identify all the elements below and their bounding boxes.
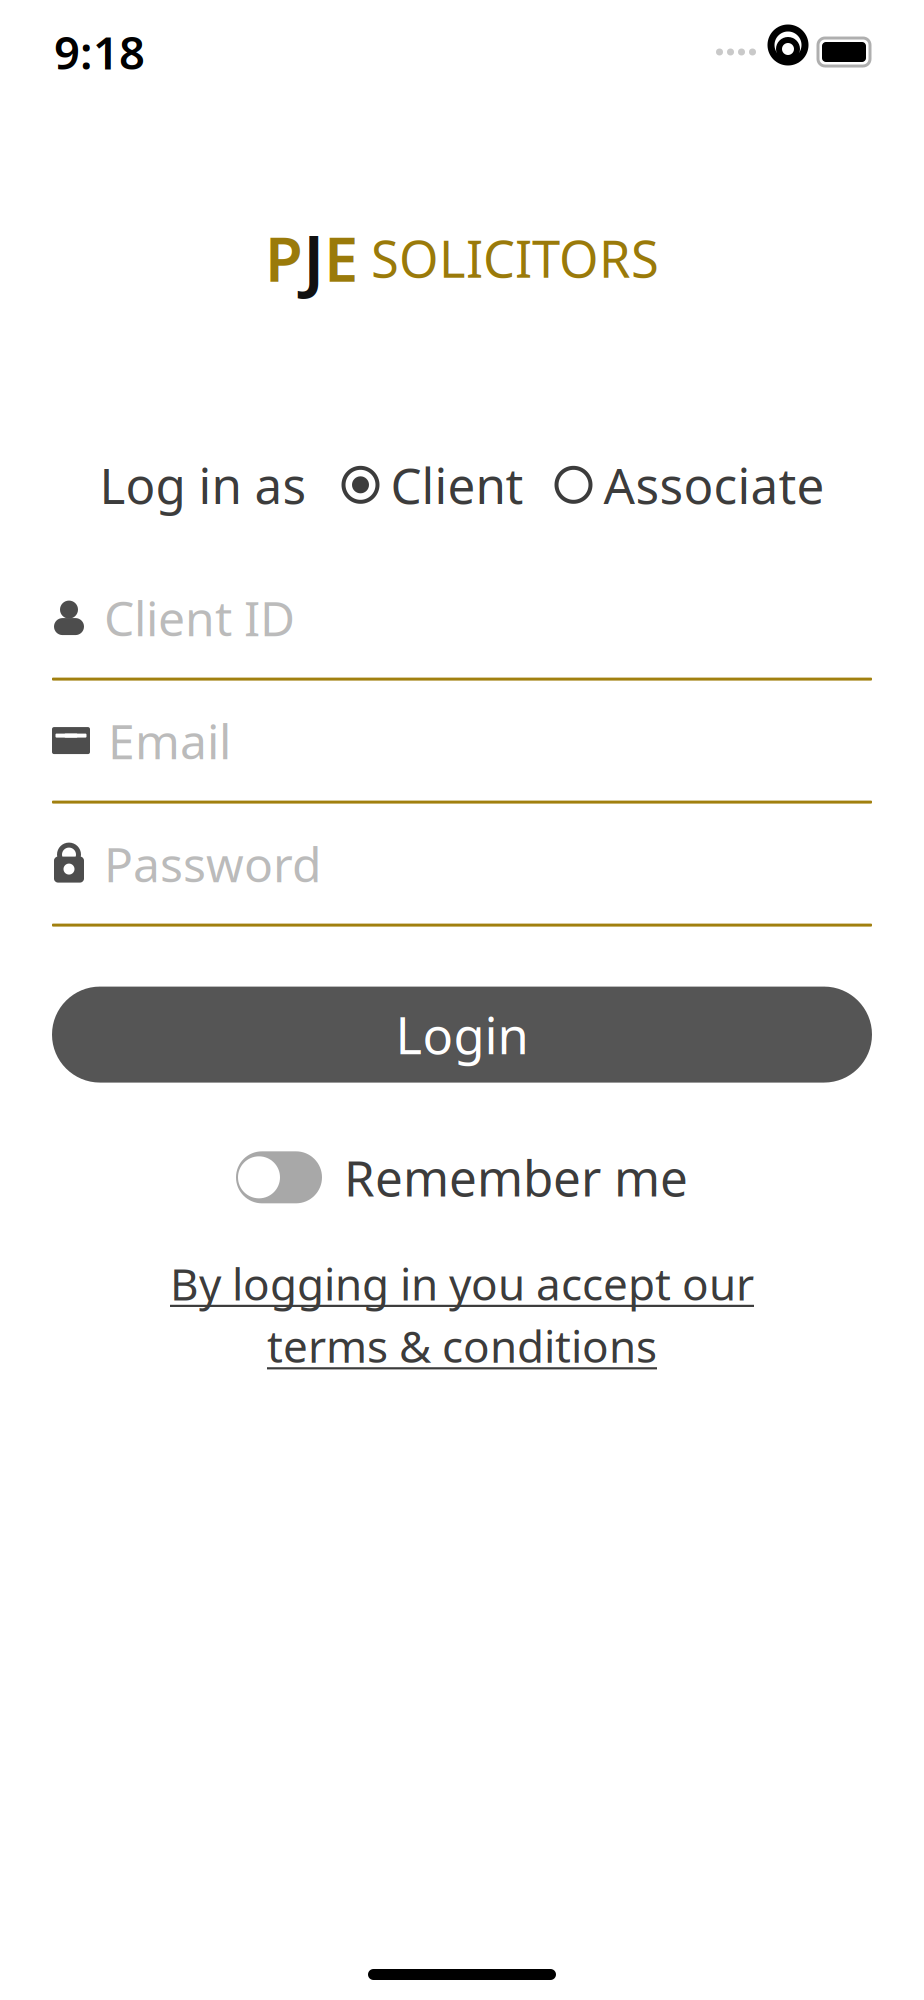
button[interactable]: Email (52, 707, 872, 804)
button[interactable]: Remember me (236, 1145, 688, 1210)
staticText: P (265, 217, 303, 299)
staticText: J (303, 212, 324, 304)
staticText: Remember me (344, 1145, 688, 1210)
staticText: Password (104, 832, 322, 895)
staticText: terms & conditions (267, 1316, 657, 1375)
staticText: By logging in you accept our (170, 1254, 754, 1312)
button[interactable]: Login (52, 987, 872, 1083)
button[interactable]: Client ID (52, 584, 872, 681)
staticText: Email (108, 709, 231, 772)
button[interactable]: Password (52, 830, 872, 927)
staticText: Log in as (99, 452, 306, 518)
staticText: Client (390, 452, 523, 518)
button[interactable]: Associate (553, 452, 824, 518)
staticText: Client ID (104, 586, 295, 649)
staticText: SOLICITORS (358, 224, 659, 292)
button[interactable]: By logging in you accept our (170, 1254, 754, 1375)
button[interactable]: Client (340, 452, 523, 518)
staticText: Associate (603, 452, 824, 518)
staticText: E (324, 217, 358, 299)
staticText: Login (395, 1001, 528, 1068)
staticText: 9:18 (54, 22, 145, 82)
